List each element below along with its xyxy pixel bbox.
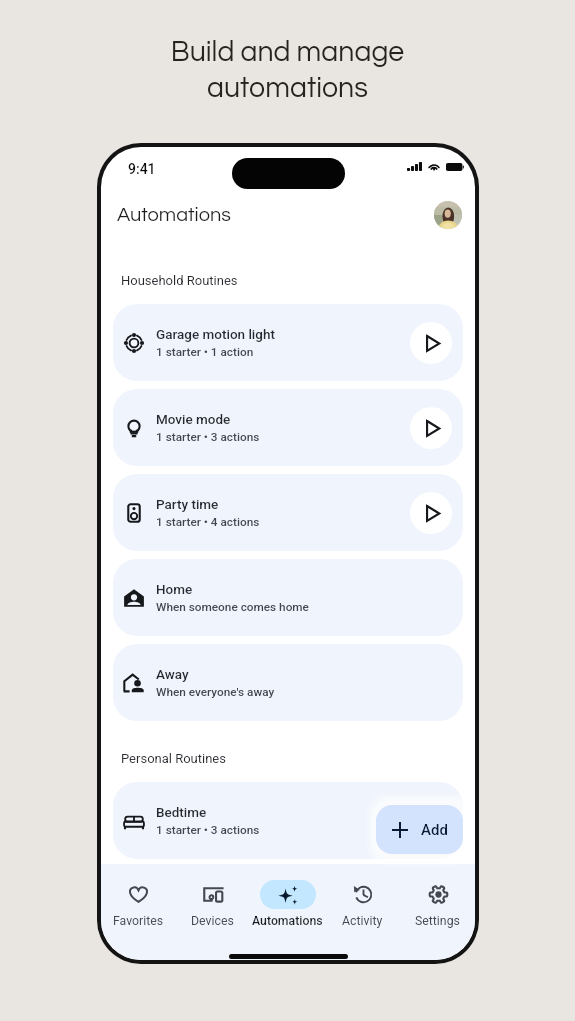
staticText: 1 starter • 3 actions xyxy=(156,823,260,837)
button[interactable]: Activity xyxy=(325,880,400,928)
staticText: 1 starter • 1 action xyxy=(156,345,254,359)
button[interactable]: Home xyxy=(113,559,463,636)
staticText: When someone comes home xyxy=(156,600,309,614)
staticText: When everyone's away xyxy=(156,685,275,699)
staticText: Personal Routines xyxy=(121,751,226,766)
staticText: 1 starter • 4 actions xyxy=(156,515,260,529)
button[interactable]: Settings xyxy=(400,880,475,928)
staticText: Devices xyxy=(191,914,234,928)
button[interactable]: Movie mode xyxy=(113,389,463,466)
staticText: 1 starter • 3 actions xyxy=(156,430,260,444)
button[interactable]: Devices xyxy=(175,880,250,928)
button[interactable]: Away xyxy=(113,644,463,721)
button[interactable]: Account xyxy=(434,201,462,229)
staticText: Away xyxy=(156,666,189,682)
button[interactable]: Party time xyxy=(113,474,463,551)
staticText: 9:41 xyxy=(128,161,156,177)
staticText: Movie mode xyxy=(156,411,231,427)
staticText: Automations xyxy=(117,205,231,226)
staticText: Build and manage automations xyxy=(0,38,575,103)
staticText: Household Routines xyxy=(121,273,238,288)
staticText: Add xyxy=(421,821,448,839)
staticText: Home xyxy=(156,581,193,597)
button[interactable]: Play xyxy=(410,322,452,364)
staticText: Party time xyxy=(156,496,219,512)
staticText: Garage motion light xyxy=(156,326,275,342)
button[interactable]: Favorites xyxy=(101,880,175,928)
staticText: Activity xyxy=(342,914,383,928)
staticText: Bedtime xyxy=(156,804,207,820)
button[interactable]: Garage motion light xyxy=(113,304,463,381)
staticText: Favorites xyxy=(113,914,164,928)
button[interactable]: Add xyxy=(376,805,463,854)
staticText: Automations xyxy=(252,914,323,928)
button[interactable]: Automations xyxy=(250,880,325,928)
button[interactable]: Play xyxy=(410,492,452,534)
button[interactable]: Play xyxy=(410,407,452,449)
staticText: Settings xyxy=(415,914,460,928)
button[interactable]: Bedtime xyxy=(113,782,463,859)
